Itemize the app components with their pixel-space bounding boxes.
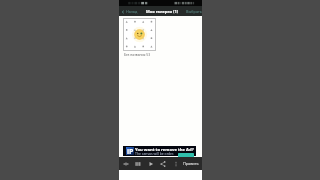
button[interactable] xyxy=(123,18,156,51)
button[interactable]: Remove ads xyxy=(178,153,194,157)
staticText: The canvas will be order. xyxy=(135,151,174,156)
staticText: iP xyxy=(127,147,134,155)
button[interactable]: iP xyxy=(123,146,196,156)
button[interactable]: Выбрать xyxy=(186,9,202,14)
button[interactable]: Play xyxy=(145,158,156,169)
staticText: Без названия 53 xyxy=(124,52,151,56)
button[interactable]: Layers xyxy=(132,158,143,169)
button[interactable]: Править xyxy=(182,161,200,166)
button[interactable]: Share xyxy=(157,158,168,169)
button[interactable]: Назад xyxy=(120,9,139,14)
button[interactable]: Add xyxy=(120,158,131,169)
button[interactable]: More options xyxy=(170,158,181,169)
staticText: You want to remove the Ad? xyxy=(135,147,194,153)
staticText: Моя галерея (1) xyxy=(146,9,179,14)
staticText: Назад xyxy=(126,9,138,14)
